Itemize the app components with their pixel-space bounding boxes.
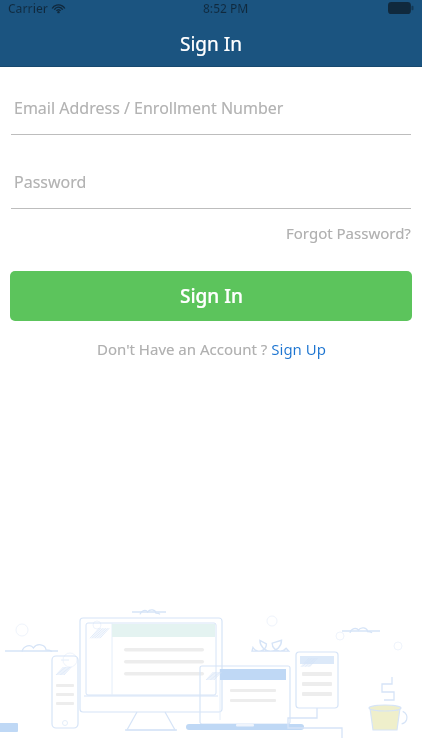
staticText: Sign In — [180, 31, 242, 57]
staticText: Don't Have an Account ? Sign Up — [97, 339, 326, 359]
staticText: Sign In — [180, 283, 243, 309]
staticText: Password — [14, 171, 87, 193]
staticText: 8:52 PM — [203, 0, 249, 16]
button[interactable]: Email Address / Enrollment Number — [11, 91, 411, 135]
staticText: Forgot Password? — [286, 223, 411, 243]
button[interactable]: Forgot Password? — [276, 209, 411, 249]
button[interactable]: Don't Have an Account ? Sign Up — [93, 335, 330, 363]
staticText: Carrier — [8, 0, 48, 16]
button[interactable]: Sign In — [10, 271, 412, 321]
staticText: Email Address / Enrollment Number — [14, 97, 284, 119]
button[interactable]: Password — [11, 165, 411, 209]
